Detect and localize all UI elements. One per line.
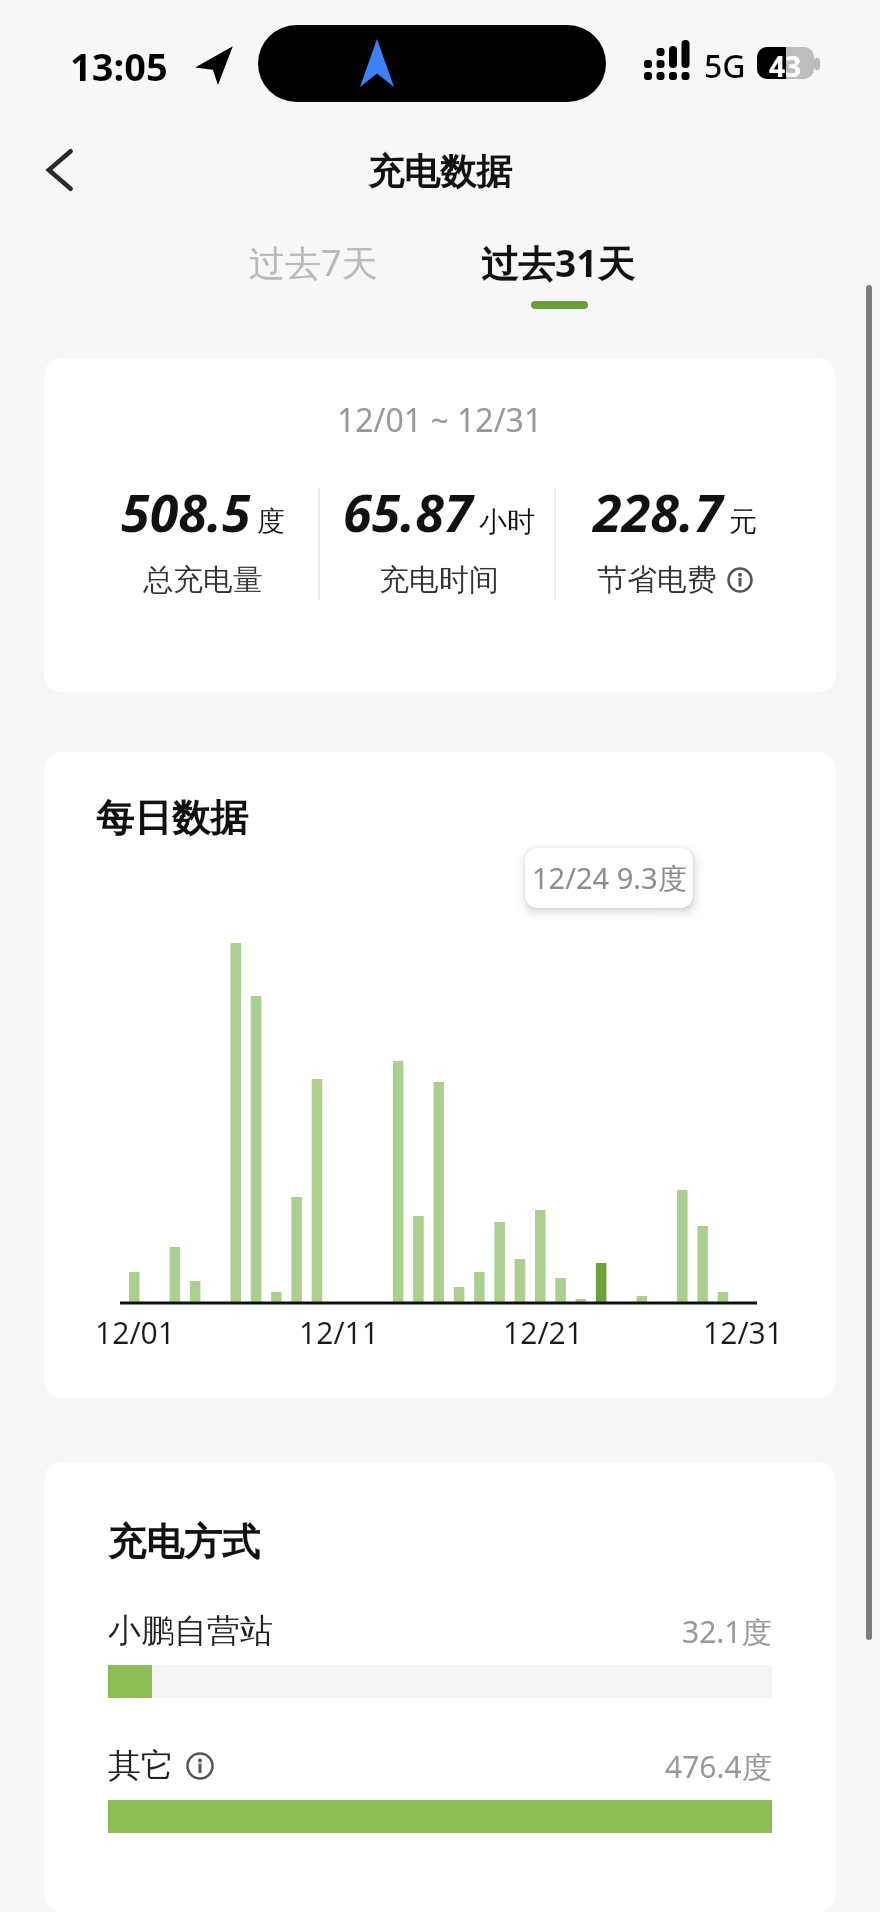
button[interactable]: 过去31天 [478, 222, 638, 302]
button[interactable] [46, 150, 74, 190]
staticText: 充电时间 [379, 561, 499, 599]
staticText: 其它 [108, 1745, 174, 1787]
staticText: 12/11 [294, 1312, 384, 1353]
staticText: 5G [704, 44, 746, 88]
staticText: 小鹏自营站 [108, 1610, 273, 1652]
staticText: 476.4度 [665, 1746, 772, 1787]
staticText: 43 [769, 47, 802, 79]
staticText: 度 [257, 504, 285, 539]
button[interactable] [186, 1752, 214, 1780]
staticText: 充电数据 [368, 149, 512, 194]
button[interactable] [727, 567, 753, 593]
staticText: 13:05 [70, 40, 168, 92]
staticText: 32.1度 [682, 1611, 772, 1652]
staticText: 12/01 ~ 12/31 [337, 398, 543, 442]
staticText: 过去31天 [481, 237, 635, 288]
staticText: 充电方式 [108, 1518, 260, 1566]
staticText: 12/01 [90, 1312, 180, 1353]
staticText: 65.87 [343, 476, 473, 547]
staticText: 每日数据 [96, 794, 248, 842]
staticText: 过去7天 [249, 238, 378, 287]
staticText: 小时 [479, 504, 535, 539]
staticText: 228.7 [593, 476, 723, 547]
staticText: 12/31 [698, 1312, 788, 1353]
staticText: 元 [729, 504, 757, 539]
staticText: 12/24 9.3度 [532, 858, 687, 898]
staticText: 节省电费 [597, 561, 717, 599]
button[interactable]: 过去7天 [233, 222, 393, 302]
staticText: 12/21 [498, 1312, 588, 1353]
staticText: 总充电量 [143, 561, 263, 599]
staticText: 508.5 [121, 476, 251, 547]
